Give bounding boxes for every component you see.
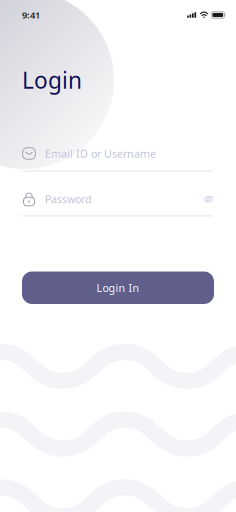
button[interactable]: Login In <box>22 271 214 304</box>
staticText: Login <box>22 65 82 95</box>
staticText: Email ID or Username <box>45 146 156 161</box>
staticText: Login In <box>96 281 139 295</box>
staticText: Password <box>45 192 92 206</box>
staticText: 9:41 <box>22 9 40 21</box>
button[interactable]: Show password <box>203 192 214 206</box>
